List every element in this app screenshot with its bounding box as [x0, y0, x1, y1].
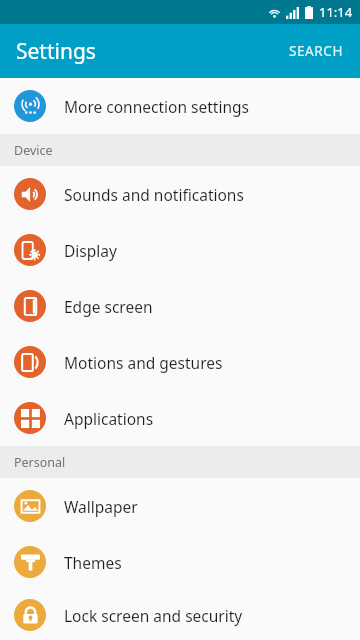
staticText: Motions and gestures — [64, 352, 223, 373]
staticText: Settings — [16, 37, 96, 66]
button[interactable]: Themes — [0, 534, 360, 590]
staticText: Lock screen and security — [64, 605, 243, 626]
staticText: Device — [14, 142, 53, 159]
staticText: Themes — [64, 552, 122, 573]
staticText: Applications — [64, 408, 154, 429]
button[interactable]: Edge screen — [0, 278, 360, 334]
button[interactable]: SEARCH — [273, 24, 360, 78]
button[interactable]: Applications — [0, 390, 360, 446]
button[interactable]: More connection settings — [0, 78, 360, 134]
staticText: Personal — [14, 454, 66, 471]
staticText: More connection settings — [64, 96, 249, 117]
staticText: SEARCH — [289, 42, 344, 60]
button[interactable]: Display — [0, 222, 360, 278]
staticText: Edge screen — [64, 296, 153, 317]
button[interactable]: Lock screen and security — [0, 590, 360, 640]
button[interactable]: Motions and gestures — [0, 334, 360, 390]
staticText: Sounds and notifications — [64, 184, 244, 205]
button[interactable]: Sounds and notifications — [0, 166, 360, 222]
staticText: Display — [64, 240, 117, 261]
staticText: 11:14 — [319, 3, 353, 21]
button[interactable]: Wallpaper — [0, 478, 360, 534]
staticText: Wallpaper — [64, 496, 138, 517]
